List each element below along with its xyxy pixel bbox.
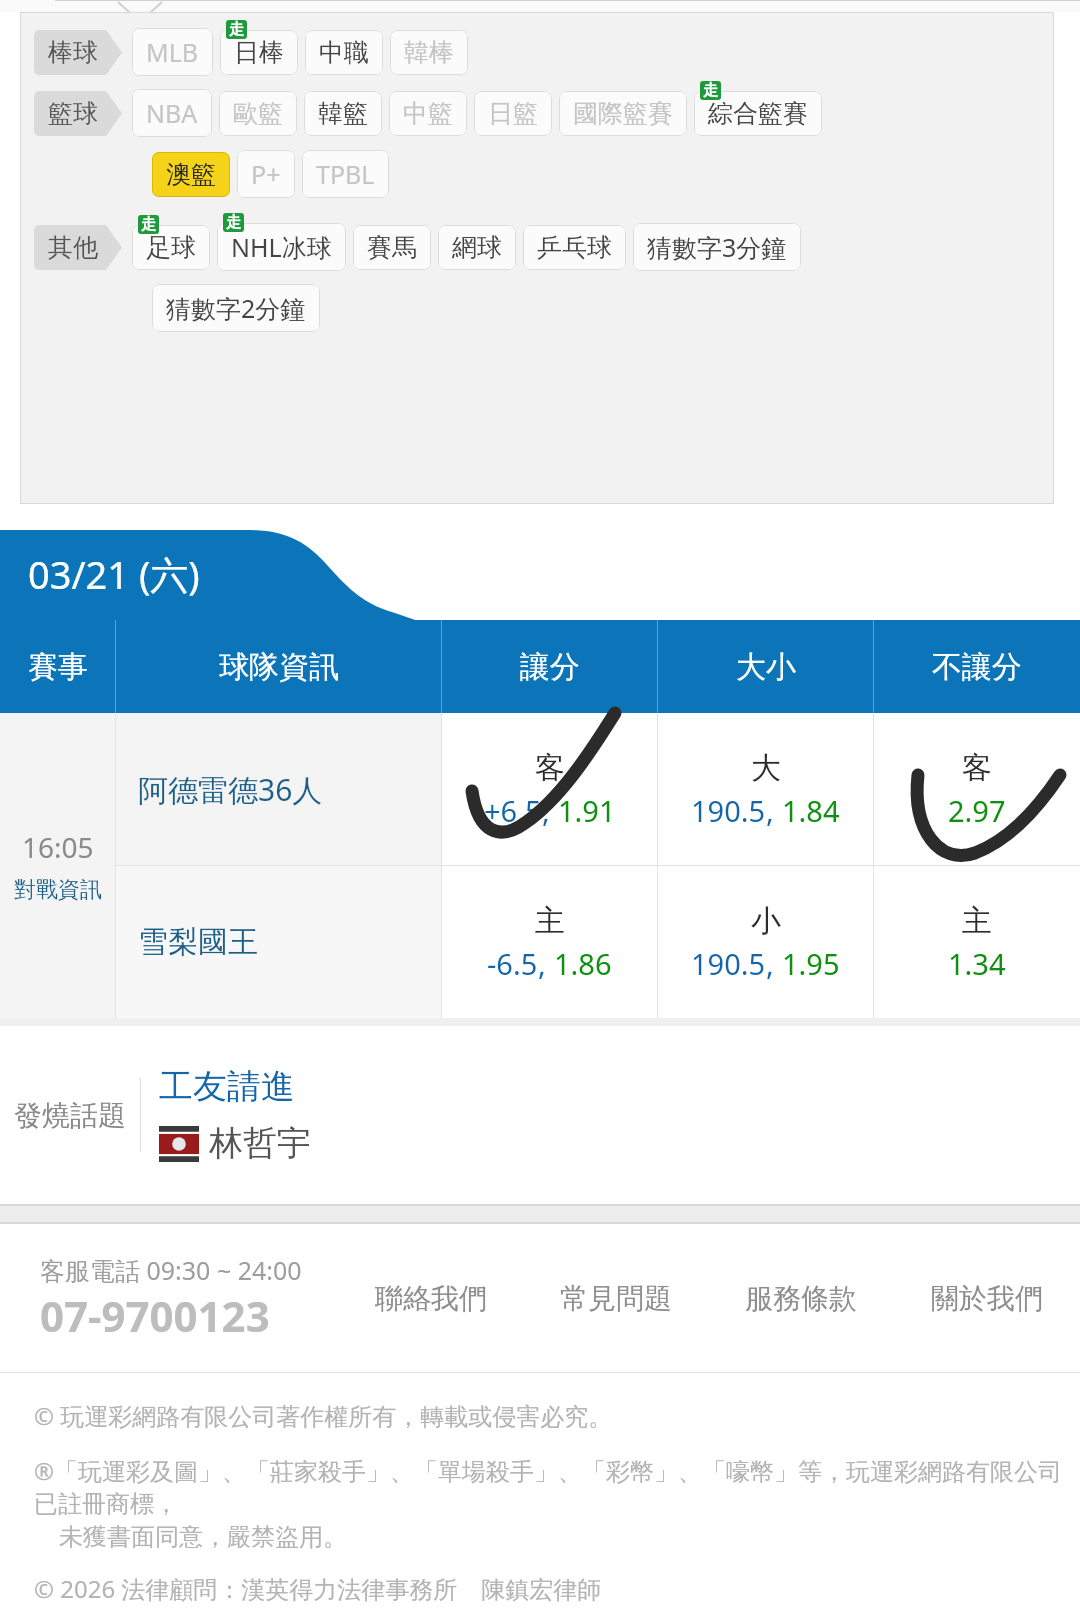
button[interactable]: 中職 <box>305 30 383 75</box>
button[interactable]: 常見問題 <box>523 1281 708 1316</box>
staticText: 猜數字2分鐘 <box>166 291 306 325</box>
button[interactable]: 乒乓球 <box>523 225 626 270</box>
staticText: 走 <box>226 213 241 232</box>
button[interactable]: TPBL <box>302 150 389 198</box>
button[interactable]: 足球 <box>132 225 210 270</box>
staticText: 日籃 <box>488 98 538 129</box>
staticText: 國際籃賽 <box>573 98 673 129</box>
staticText: ®「玩運彩及圖」、「莊家殺手」、「單場殺手」、「彩幣」、「嚎幣」等，玩運彩網路有… <box>34 1454 1080 1519</box>
staticText: 16:05 <box>22 828 94 866</box>
staticText: 讓分 <box>520 648 580 686</box>
staticText: 1.86 <box>554 944 612 983</box>
staticText: 主 <box>535 902 565 940</box>
staticText: , <box>766 944 782 983</box>
staticText: , <box>538 944 554 983</box>
staticText: 關於我們 <box>931 1281 1043 1316</box>
button[interactable]: P+ <box>237 150 295 198</box>
staticText: 走 <box>703 81 718 100</box>
button[interactable]: 猜數字3分鐘 <box>633 223 801 271</box>
staticText: 賽事 <box>28 648 88 686</box>
button[interactable]: 中籃 <box>389 91 467 136</box>
button[interactable]: 籃球 <box>34 91 122 136</box>
staticText: © 2026 法律顧問：漢英得力法律事務所 陳鎮宏律師 <box>34 1572 602 1605</box>
staticText: 工友請進 <box>159 1065 295 1108</box>
staticText: 澳籃 <box>166 159 216 190</box>
button[interactable]: 日棒 <box>220 30 298 75</box>
staticText: 03/21 (六) <box>28 548 200 600</box>
button[interactable]: 其他 <box>34 225 122 270</box>
staticText: 客 <box>535 749 565 787</box>
staticText: 服務條款 <box>745 1281 857 1316</box>
button[interactable]: 聯絡我們 <box>338 1281 523 1316</box>
button[interactable]: 大 <box>658 713 873 865</box>
staticText: 客 <box>962 749 992 787</box>
button[interactable]: 03/21 (六) <box>0 530 415 620</box>
button[interactable]: 主 <box>442 866 657 1018</box>
staticText: 07-9700123 <box>40 1287 270 1344</box>
button[interactable]: 客 <box>442 713 657 865</box>
staticText: 綜合籃賽 <box>708 98 808 129</box>
staticText: 聯絡我們 <box>375 1281 487 1316</box>
staticText: 中職 <box>319 37 369 68</box>
button[interactable]: 韓籃 <box>304 91 382 136</box>
staticText: 乒乓球 <box>537 232 612 263</box>
staticText: MLB <box>146 35 199 69</box>
button[interactable]: 服務條款 <box>708 1281 894 1316</box>
staticText: NHL冰球 <box>231 230 332 264</box>
staticText: 猜數字3分鐘 <box>647 230 787 264</box>
staticText: 發燒話題 <box>14 1098 126 1133</box>
staticText: +6.5 <box>484 791 542 830</box>
staticText: NBA <box>146 96 198 130</box>
staticText: 對戰資訊 <box>14 876 102 904</box>
button[interactable]: 國際籃賽 <box>559 91 687 136</box>
button[interactable]: NHL冰球 <box>217 223 346 271</box>
button[interactable]: 猜數字2分鐘 <box>152 284 320 332</box>
staticText: 棒球 <box>48 37 98 68</box>
staticText: 中籃 <box>403 98 453 129</box>
staticText: 走 <box>229 20 244 39</box>
button[interactable]: 使用者頭像 <box>159 1122 311 1165</box>
button[interactable]: 澳籃 <box>152 152 230 197</box>
staticText: 1.84 <box>782 791 840 830</box>
button[interactable]: MLB <box>132 28 213 76</box>
staticText: 雪梨國王 <box>138 923 258 961</box>
staticText: 歐籃 <box>233 98 283 129</box>
staticText: 客服電話 09:30 ~ 24:00 <box>40 1253 302 1287</box>
staticText: 林哲宇 <box>209 1122 311 1165</box>
staticText: 韓籃 <box>318 98 368 129</box>
staticText: 1.34 <box>948 944 1006 983</box>
staticText: P+ <box>251 157 281 191</box>
staticText: , <box>542 791 558 830</box>
button[interactable]: 工友請進 <box>159 1065 295 1108</box>
staticText: , <box>766 791 782 830</box>
button[interactable]: 網球 <box>438 225 516 270</box>
button[interactable]: 主 <box>874 866 1080 1018</box>
staticText: 籃球 <box>48 98 98 129</box>
button[interactable]: 客 <box>874 713 1080 865</box>
button[interactable]: 綜合籃賽 <box>694 91 822 136</box>
staticText: 1.91 <box>558 791 616 830</box>
button[interactable]: 棒球 <box>34 30 122 75</box>
button[interactable]: 日籃 <box>474 91 552 136</box>
staticText: 其他 <box>48 232 98 263</box>
staticText: 2.97 <box>948 791 1006 830</box>
staticText: 小 <box>751 902 781 940</box>
staticText: 不讓分 <box>932 648 1022 686</box>
staticText: 主 <box>962 902 992 940</box>
staticText: 1.95 <box>782 944 840 983</box>
button[interactable]: 歐籃 <box>219 91 297 136</box>
staticText: 大 <box>751 749 781 787</box>
button[interactable]: 賽馬 <box>353 225 431 270</box>
staticText: 韓棒 <box>404 37 454 68</box>
button[interactable]: 小 <box>658 866 873 1018</box>
staticText: 大小 <box>736 648 796 686</box>
button[interactable]: 關於我們 <box>894 1281 1080 1316</box>
button[interactable]: 雪梨國王 <box>116 866 441 1018</box>
button[interactable]: 對戰資訊 <box>14 876 102 904</box>
button[interactable]: NBA <box>132 89 212 137</box>
staticText: 網球 <box>452 232 502 263</box>
button[interactable]: 韓棒 <box>390 30 468 75</box>
button[interactable]: 阿德雷德36人 <box>116 713 441 865</box>
staticText: 走 <box>141 215 156 234</box>
staticText: 190.5 <box>691 791 766 830</box>
